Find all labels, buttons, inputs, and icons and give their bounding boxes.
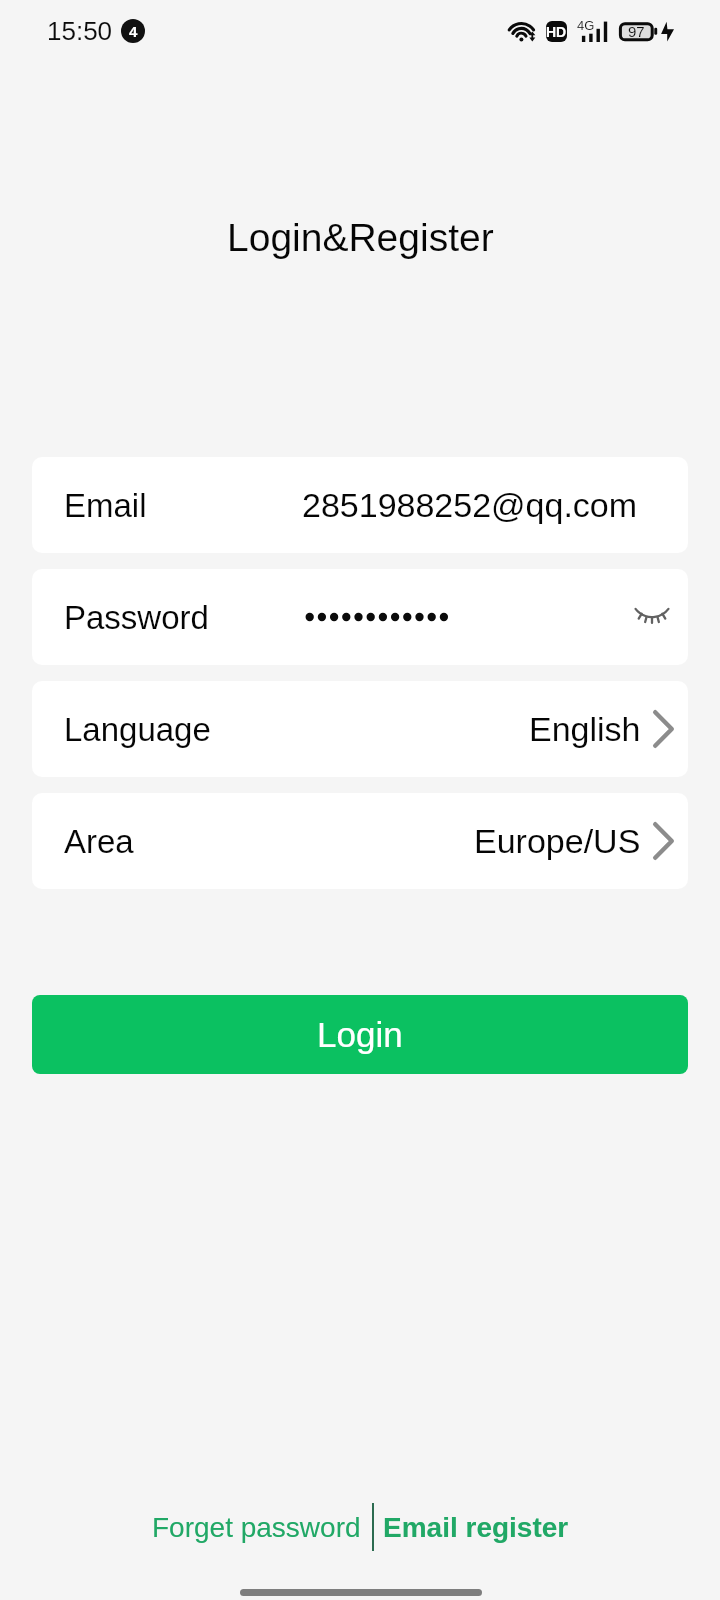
button[interactable]: Language [32, 681, 688, 777]
button[interactable]: Area [32, 793, 688, 889]
button[interactable]: Show password [610, 569, 688, 665]
staticText: Login [317, 1015, 403, 1054]
button[interactable]: Email [32, 457, 688, 553]
staticText: Area [64, 823, 134, 860]
staticText: Forget password [152, 1512, 361, 1543]
button[interactable]: Login [32, 995, 688, 1074]
button[interactable]: Password [32, 569, 688, 665]
staticText: HD [546, 24, 567, 40]
staticText: Login&Register [227, 216, 494, 260]
staticText: Language [64, 711, 211, 748]
staticText: 2851988252@qq.com [302, 486, 638, 524]
staticText: 15:50 [47, 16, 113, 45]
button[interactable]: Forget password [152, 1503, 361, 1551]
button[interactable]: Email register [383, 1503, 569, 1551]
staticText: 97 [628, 23, 645, 40]
staticText: Email register [383, 1512, 569, 1543]
staticText: 4G [577, 18, 595, 33]
staticText: Email [64, 487, 147, 524]
staticText: English [529, 710, 641, 748]
staticText: Europe/US [474, 822, 641, 860]
staticText: Password [64, 599, 209, 636]
staticText: 4 [129, 23, 138, 40]
